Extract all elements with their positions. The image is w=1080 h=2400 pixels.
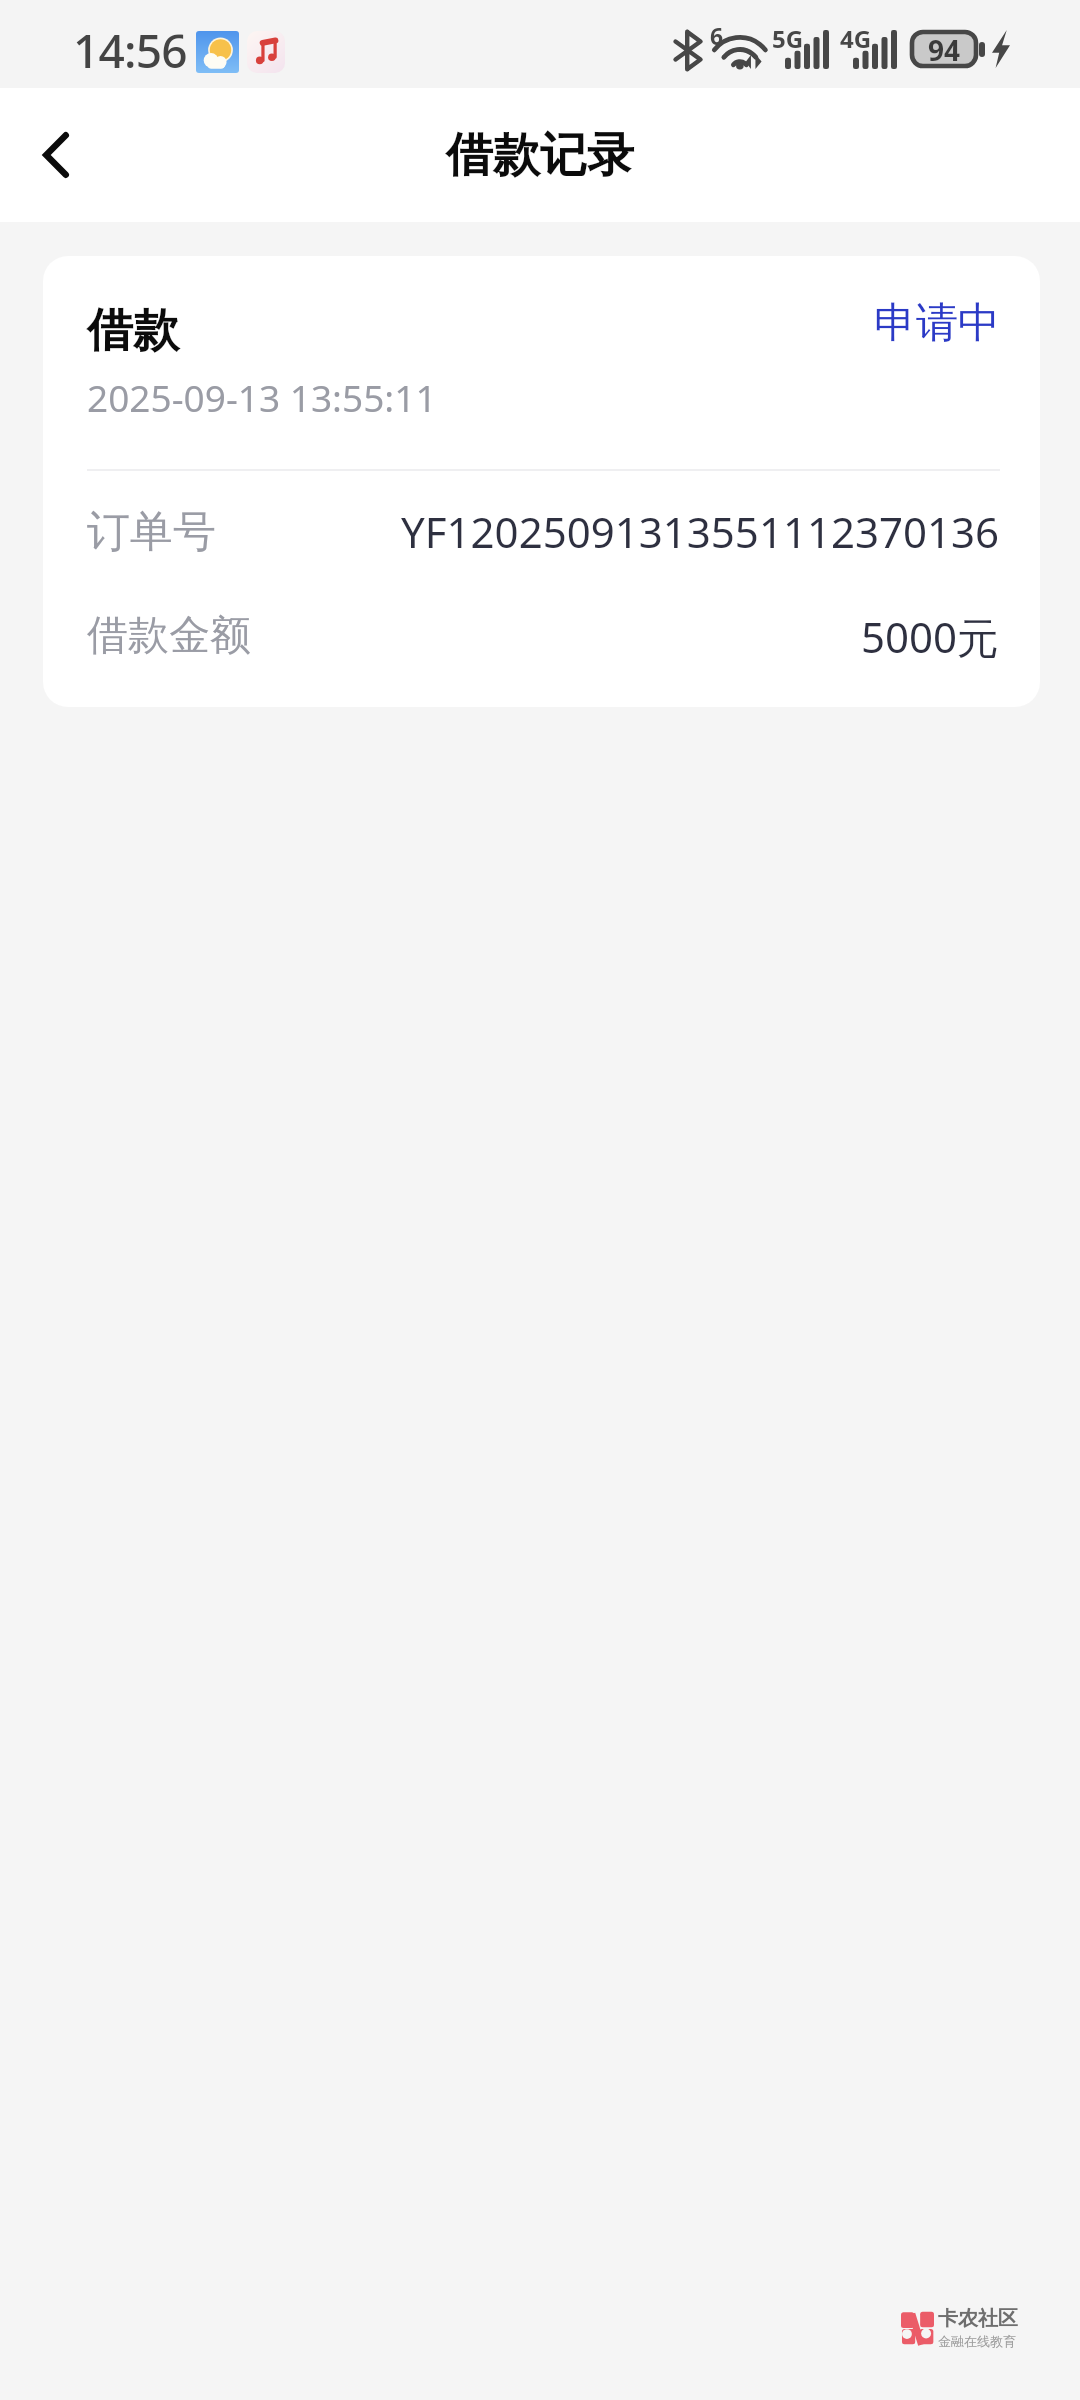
staticText: 借款金额 bbox=[87, 610, 251, 662]
staticText: 14:56 bbox=[73, 19, 187, 82]
staticText: 94 bbox=[928, 31, 961, 65]
staticText: 金融在线教育 bbox=[938, 2333, 1016, 2349]
staticText: 2025-09-13 13:55:11 bbox=[87, 372, 437, 422]
staticText: 5G bbox=[772, 22, 804, 55]
staticText: YF12025091313551112370136 bbox=[401, 503, 1000, 560]
staticText: 借款 bbox=[87, 302, 179, 360]
staticText: 6 bbox=[710, 20, 724, 51]
staticText: 卡农社区 bbox=[938, 2306, 1018, 2331]
button[interactable]: Back bbox=[0, 101, 108, 209]
staticText: 借款记录 bbox=[446, 126, 634, 185]
staticText: 5000元 bbox=[861, 608, 1000, 665]
staticText: 申请中 bbox=[874, 297, 1000, 350]
button[interactable]: 借款 bbox=[43, 256, 1040, 707]
staticText: 4G bbox=[840, 22, 872, 55]
staticText: 订单号 bbox=[87, 505, 216, 559]
